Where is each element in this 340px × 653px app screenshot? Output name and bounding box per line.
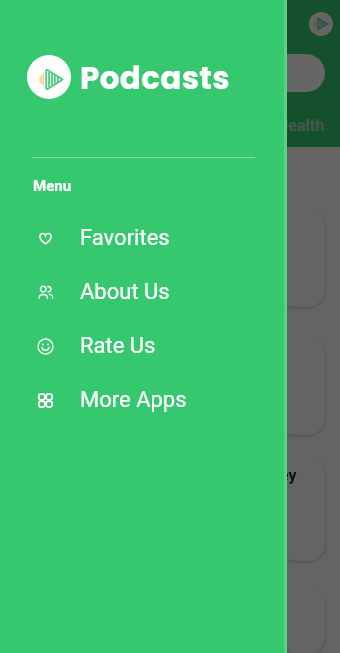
button[interactable] <box>278 587 325 653</box>
other: Rate Us <box>37 338 54 355</box>
button[interactable] <box>236 54 325 92</box>
other: Favorites <box>37 230 54 247</box>
button[interactable]: Rate Us <box>0 319 287 373</box>
staticText: Favorites <box>80 225 170 251</box>
staticText: About Us <box>80 279 170 305</box>
staticText: Menu <box>33 177 72 195</box>
other: Podcasts logo <box>27 55 71 99</box>
button[interactable]: More Apps <box>0 373 287 427</box>
staticText: Health <box>277 116 325 135</box>
button[interactable]: Close navigation drawer <box>0 0 340 653</box>
button[interactable] <box>278 456 325 560</box>
button[interactable]: App logo <box>309 12 333 36</box>
staticText: Mindful Journey <box>179 466 297 485</box>
staticText: More Apps <box>80 387 187 413</box>
staticText: Rate Us <box>80 333 156 359</box>
button[interactable]: About Us <box>0 265 287 319</box>
button[interactable]: Favorites <box>0 211 287 265</box>
button[interactable] <box>278 208 325 306</box>
button[interactable] <box>278 336 325 434</box>
other: About Us <box>37 284 54 301</box>
other: More Apps <box>37 392 54 409</box>
staticText: Podcasts <box>80 56 230 99</box>
